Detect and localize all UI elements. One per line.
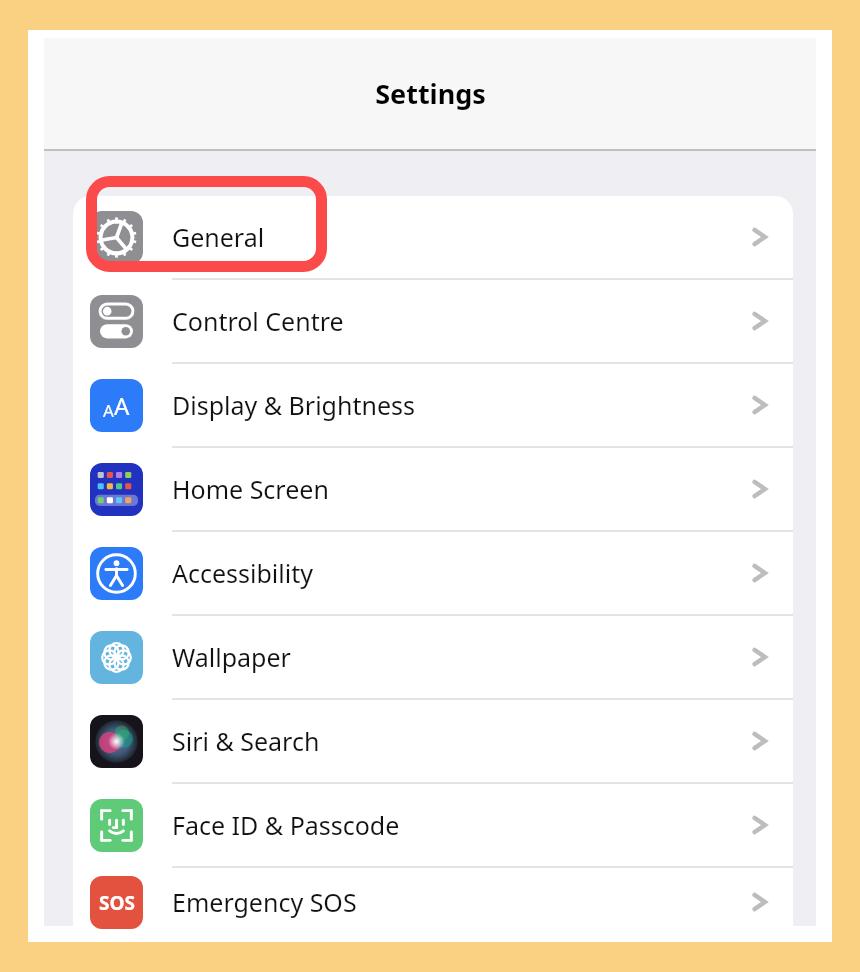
staticText: Control Centre [172,304,749,338]
staticText: Emergency SOS [172,885,749,919]
staticText: A [114,389,130,422]
button[interactable]: Control Centre [73,280,793,364]
button[interactable]: Siri & Search [73,700,793,784]
staticText: Face ID & Passcode [172,808,749,842]
staticText: SOS [99,890,135,916]
button[interactable]: Wallpaper [73,616,793,700]
button[interactable]: SOS [73,868,793,936]
staticText: General [172,220,749,254]
staticText: Display & Brightness [172,388,749,422]
button[interactable]: Face ID & Passcode [73,784,793,868]
staticText: A [103,399,114,422]
button[interactable]: Accessibility [73,532,793,616]
button[interactable]: General [73,196,793,280]
staticText: Wallpaper [172,640,749,674]
button[interactable]: A [73,364,793,448]
button[interactable]: Home Screen [73,448,793,532]
button[interactable]: General highlighted [86,176,327,272]
staticText: Settings [375,75,486,112]
staticText: Home Screen [172,472,749,506]
staticText: Accessibility [172,556,749,590]
staticText: Siri & Search [172,724,749,758]
